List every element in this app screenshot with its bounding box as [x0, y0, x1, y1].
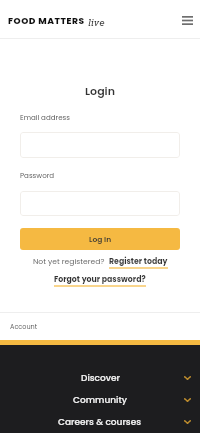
staticText: Discover: [81, 372, 120, 385]
staticText: Community: [73, 394, 128, 407]
button[interactable]: Open menu: [177, 10, 197, 30]
staticText: live: [88, 17, 105, 28]
button[interactable]: Community: [0, 389, 200, 411]
button[interactable]: Email address field: [20, 132, 180, 158]
staticText: FOOD MATTERS: [8, 15, 85, 28]
staticText: Login: [0, 83, 200, 98]
button[interactable]: FOOD MATTERS: [8, 15, 105, 28]
staticText: Password: [20, 171, 55, 181]
staticText: Email address: [20, 113, 70, 123]
button[interactable]: Password field: [20, 191, 180, 216]
button[interactable]: Register today: [109, 256, 168, 267]
staticText: Not yet registered?: [33, 256, 105, 267]
button[interactable]: Discover: [0, 367, 200, 389]
staticText: Log in: [89, 234, 112, 244]
button[interactable]: Account: [10, 313, 190, 340]
staticText: Forgot your password?: [54, 274, 146, 285]
staticText: Account: [10, 322, 38, 331]
staticText: Register today: [109, 256, 168, 267]
button[interactable]: Log in: [20, 228, 180, 250]
button[interactable]: Forgot your password?: [54, 274, 146, 285]
staticText: Careers & courses: [58, 416, 142, 429]
button[interactable]: Careers & courses: [0, 411, 200, 433]
